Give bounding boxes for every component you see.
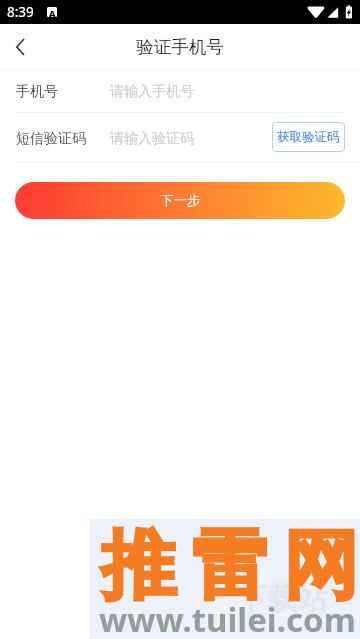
staticText: A: [49, 7, 56, 17]
staticText: 下载站: [237, 580, 327, 618]
staticText: 请输入验证码: [110, 130, 194, 148]
staticText: 8:39: [7, 3, 34, 21]
staticText: 推雷网: [93, 519, 360, 613]
staticText: 短信验证码: [16, 130, 86, 148]
staticText: 获取验证码: [277, 129, 340, 145]
staticText: 请输入手机号: [110, 83, 194, 101]
button[interactable]: Back: [0, 27, 40, 67]
staticText: www.tuilei.com: [99, 597, 356, 639]
staticText: 手机号: [16, 83, 58, 101]
staticText: 下一步: [160, 192, 201, 209]
button[interactable]: 下一步: [15, 182, 345, 219]
staticText: 验证手机号: [136, 36, 224, 58]
button[interactable]: 获取验证码: [272, 122, 345, 152]
